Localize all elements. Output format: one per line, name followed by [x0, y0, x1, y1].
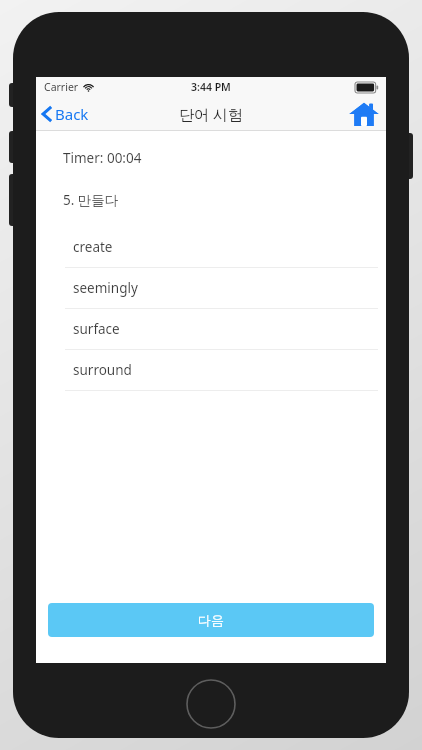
- button[interactable]: 다음: [48, 603, 374, 637]
- button[interactable]: surround: [36, 350, 386, 390]
- button[interactable]: Back: [36, 97, 99, 130]
- staticText: 다음: [198, 612, 224, 628]
- staticText: surround: [73, 361, 132, 379]
- staticText: seemingly: [73, 279, 138, 297]
- button[interactable]: create: [36, 227, 386, 267]
- staticText: Timer: 00:04: [63, 149, 142, 167]
- staticText: 3:44 PM: [191, 80, 231, 94]
- button[interactable]: surface: [36, 309, 386, 349]
- staticText: create: [73, 238, 113, 256]
- button[interactable]: Home: [342, 97, 386, 130]
- other: Home button: [186, 679, 236, 729]
- button[interactable]: seemingly: [36, 268, 386, 308]
- staticText: 5. 만들다: [63, 191, 119, 209]
- staticText: 단어 시험: [179, 104, 243, 124]
- staticText: Back: [55, 104, 89, 124]
- staticText: Carrier: [44, 80, 79, 94]
- staticText: surface: [73, 320, 120, 338]
